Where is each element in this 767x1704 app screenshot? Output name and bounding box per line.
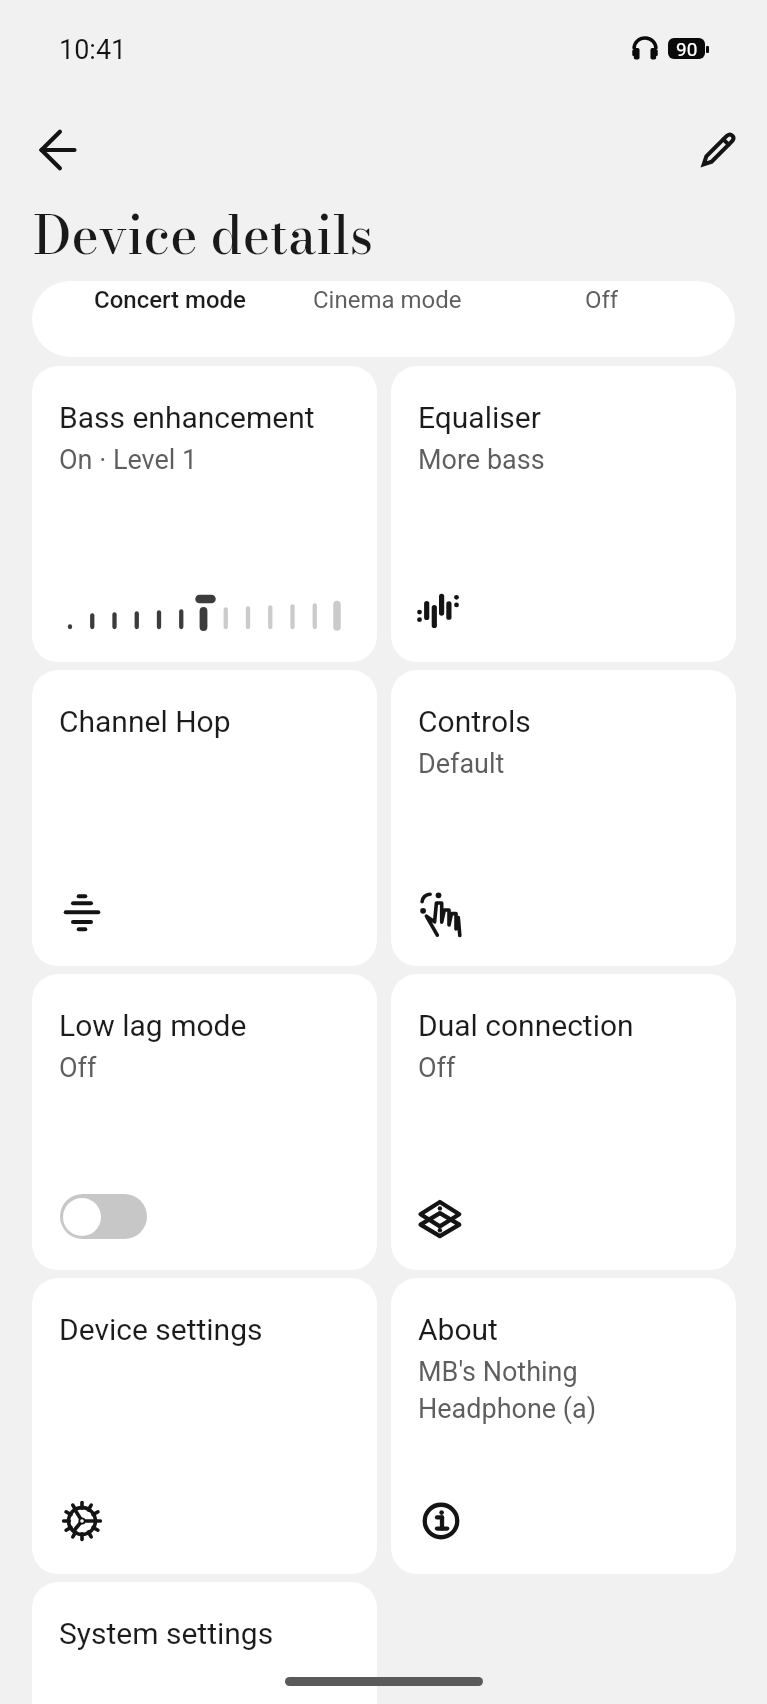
staticText: About (418, 1312, 498, 1347)
button[interactable]: Channel Hop (32, 670, 377, 966)
staticText: Cinema mode (313, 286, 462, 314)
staticText: MB's Nothing Headphone (a) (418, 1356, 597, 1424)
button[interactable]: Low lag mode (32, 974, 377, 1270)
button[interactable]: Controls (391, 670, 736, 966)
button[interactable]: Device settings (32, 1278, 377, 1574)
staticText: Concert mode (94, 286, 246, 314)
staticText: Device settings (59, 1312, 263, 1347)
button[interactable]: Dual connection (391, 974, 736, 1270)
button[interactable]: Low lag mode toggle (60, 1194, 147, 1239)
button[interactable]: About (391, 1278, 736, 1574)
staticText: Controls (418, 704, 531, 739)
button[interactable]: System settings (32, 1582, 377, 1704)
staticText: More bass (418, 444, 545, 476)
button[interactable]: Back (22, 114, 94, 186)
staticText: 10:41 (59, 34, 127, 66)
button[interactable]: Off (569, 281, 635, 325)
button[interactable]: Equaliser (391, 366, 736, 662)
staticText: Device details (33, 195, 374, 274)
button[interactable]: Bass enhancement (32, 366, 377, 662)
staticText: System settings (59, 1616, 274, 1651)
staticText: Bass enhancement (59, 400, 315, 435)
staticText: Default (418, 748, 505, 780)
staticText: Dual connection (418, 1008, 634, 1043)
button[interactable]: Edit (682, 114, 754, 186)
button[interactable]: Cinema mode (297, 281, 478, 325)
button[interactable]: Concert mode (78, 281, 262, 325)
staticText: Channel Hop (59, 704, 231, 739)
staticText: 90 (676, 38, 698, 59)
staticText: Off (59, 1052, 97, 1084)
staticText: On · Level 1 (59, 444, 198, 476)
staticText: Low lag mode (59, 1008, 247, 1043)
staticText: Off (585, 286, 619, 314)
staticText: Equaliser (418, 400, 541, 435)
staticText: Off (418, 1052, 456, 1084)
